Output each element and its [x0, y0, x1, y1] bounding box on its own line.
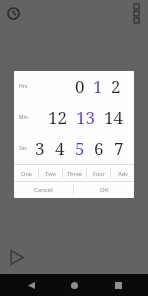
- button[interactable]: Cancel: [14, 182, 73, 198]
- button[interactable]: Back: [18, 274, 44, 296]
- button[interactable]: 5: [71, 137, 89, 160]
- staticText: Four: [93, 170, 105, 177]
- staticText: 5: [75, 137, 85, 160]
- button[interactable]: 4: [51, 137, 69, 160]
- button[interactable]: 0: [71, 75, 89, 98]
- button[interactable]: 7: [110, 137, 128, 160]
- staticText: 12: [48, 106, 68, 129]
- button[interactable]: Recents: [105, 274, 131, 296]
- button[interactable]: 6: [90, 137, 108, 160]
- staticText: Cancel: [34, 186, 53, 194]
- other: Play: [9, 250, 24, 265]
- staticText: 14: [104, 106, 124, 129]
- staticText: Hrs: [19, 83, 28, 90]
- staticText: OK: [100, 186, 109, 194]
- staticText: 3: [35, 137, 45, 160]
- staticText: 2: [111, 75, 121, 98]
- staticText: 1: [93, 75, 103, 98]
- button[interactable]: 14: [100, 106, 128, 129]
- button[interactable]: 12: [44, 106, 72, 129]
- staticText: One: [21, 170, 32, 177]
- button[interactable]: Three: [63, 165, 86, 181]
- staticText: Sec: [19, 145, 27, 152]
- button[interactable]: Adv: [111, 165, 134, 181]
- staticText: Two: [45, 170, 56, 177]
- button[interactable]: 13: [72, 106, 100, 129]
- button[interactable]: One: [14, 165, 38, 181]
- staticText: 4: [55, 137, 65, 160]
- staticText: 7: [114, 137, 124, 160]
- button[interactable]: OK: [74, 182, 134, 198]
- staticText: 13: [76, 106, 96, 129]
- staticText: Three: [67, 170, 82, 177]
- button[interactable]: 3: [31, 137, 49, 160]
- button[interactable]: Four: [87, 165, 110, 181]
- button[interactable]: 2: [107, 75, 125, 98]
- button[interactable]: Two: [39, 165, 62, 181]
- button[interactable]: 1: [89, 75, 107, 98]
- staticText: 6: [94, 137, 104, 160]
- staticText: Adv: [118, 170, 128, 177]
- staticText: 0: [75, 75, 85, 98]
- button[interactable]: Home: [61, 274, 87, 296]
- staticText: Min: [19, 114, 28, 121]
